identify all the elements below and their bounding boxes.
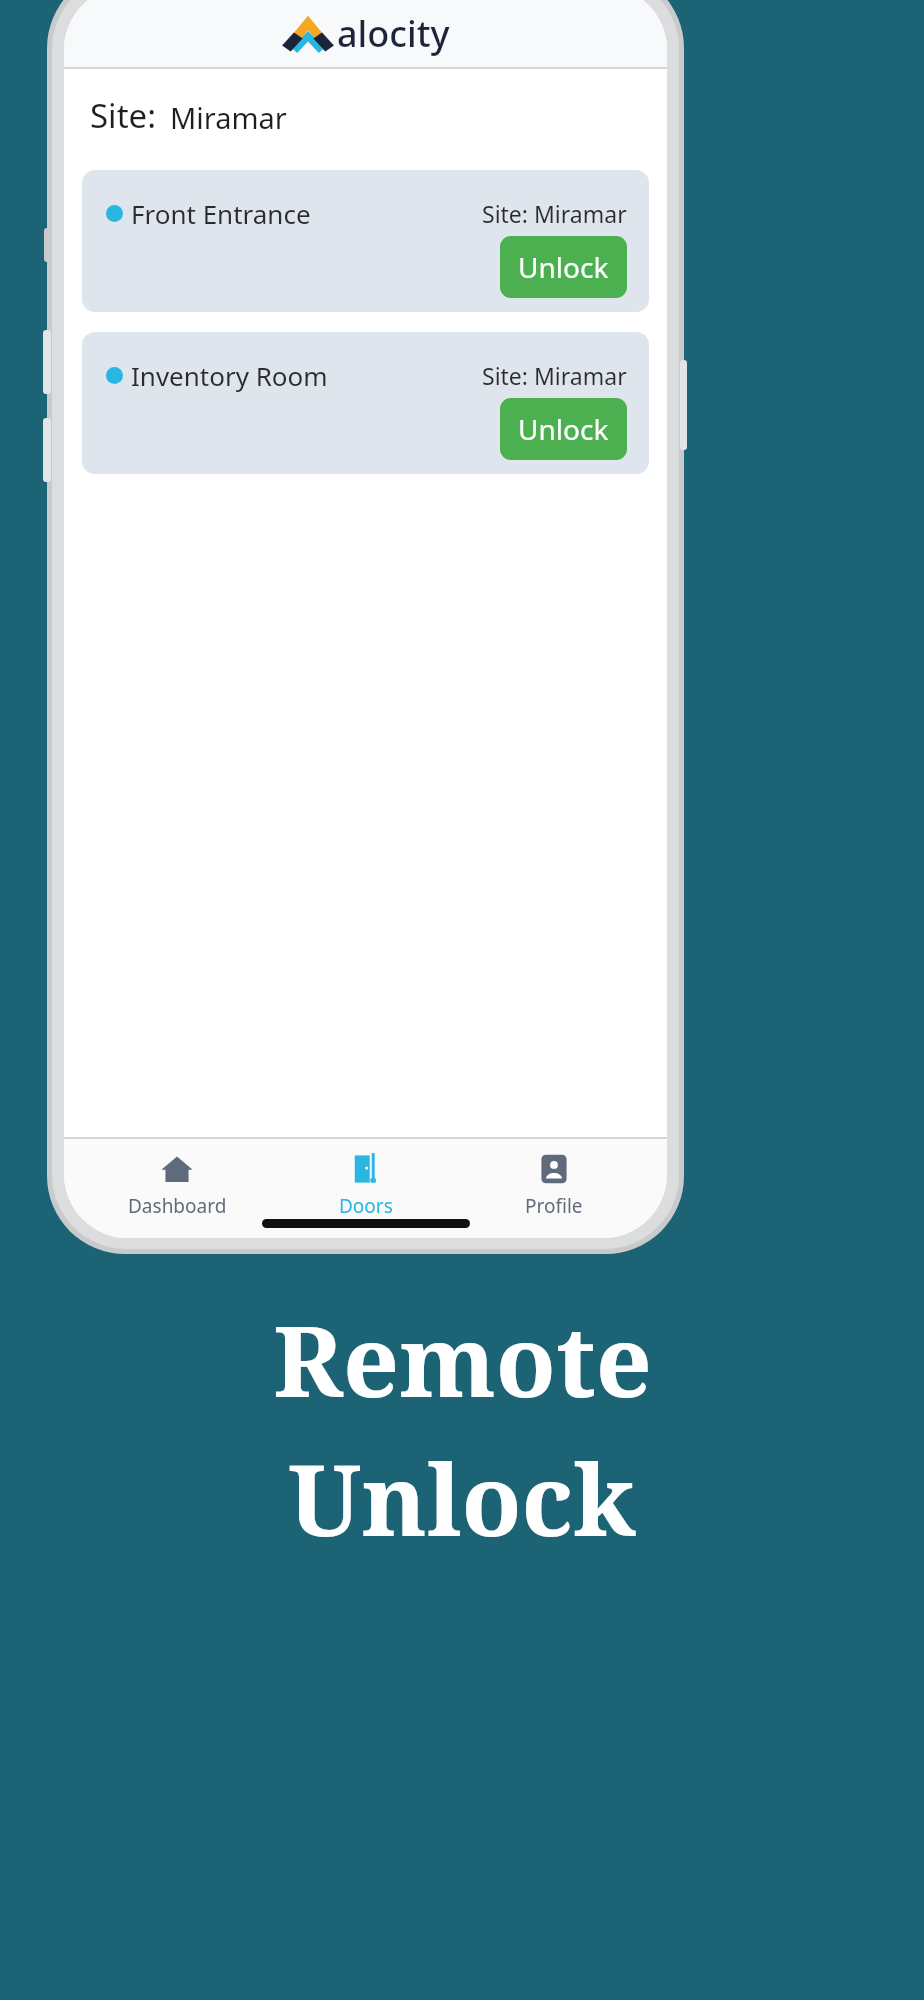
staticText: Site: Miramar (482, 360, 627, 391)
button[interactable]: Doors (291, 1152, 441, 1219)
button[interactable]: Unlock (500, 398, 627, 460)
staticText: Site: (90, 93, 156, 138)
other: Dashboard (160, 1152, 194, 1186)
button[interactable]: Inventory Room (82, 332, 649, 474)
button[interactable]: Dashboard (102, 1152, 252, 1219)
staticText: Inventory Room (131, 358, 328, 393)
button[interactable]: Unlock (500, 236, 627, 298)
other: Profile (537, 1152, 571, 1186)
staticText: Doors (339, 1193, 393, 1219)
staticText: alocity (337, 9, 450, 58)
staticText: Unlock (518, 410, 609, 448)
staticText: Dashboard (128, 1193, 227, 1219)
other: Doors (349, 1152, 383, 1186)
staticText: Miramar (170, 98, 287, 137)
staticText: Site: Miramar (482, 198, 627, 229)
staticText: Profile (525, 1193, 583, 1219)
button[interactable]: Front Entrance (82, 170, 649, 312)
staticText: Remote (273, 1292, 652, 1425)
staticText: Unlock (288, 1431, 636, 1564)
button[interactable]: Profile (479, 1152, 629, 1219)
staticText: Unlock (518, 248, 609, 286)
staticText: Front Entrance (131, 196, 311, 231)
